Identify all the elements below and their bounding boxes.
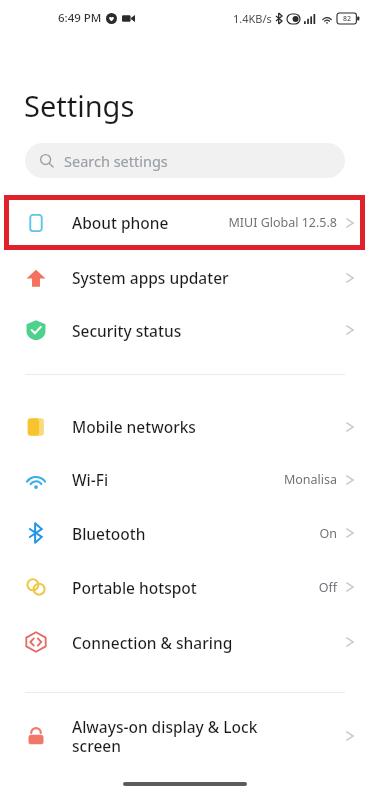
button[interactable]: Wi-Fi xyxy=(0,453,369,506)
button[interactable]: Security status xyxy=(0,304,369,356)
button[interactable]: About phone xyxy=(0,196,369,249)
staticText: Security status xyxy=(72,320,345,341)
button[interactable]: Portable hotspot xyxy=(0,560,369,614)
staticText: 82 xyxy=(343,14,352,24)
staticText: Monalisa xyxy=(283,471,337,488)
staticText: MIUI Global 12.5.8 xyxy=(228,214,337,231)
staticText: Wi-Fi xyxy=(72,469,283,490)
staticText: Always-on display & Lock screen xyxy=(72,716,345,756)
staticText: About phone xyxy=(72,212,228,233)
button[interactable]: Mobile networks xyxy=(0,400,369,453)
staticText: Off xyxy=(318,579,337,596)
staticText: On xyxy=(319,525,337,542)
staticText: Portable hotspot xyxy=(72,577,318,598)
staticText: 6:49 PM xyxy=(58,10,102,26)
button[interactable]: System apps updater xyxy=(0,251,369,304)
button[interactable]: Bluetooth xyxy=(0,506,369,560)
button[interactable]: Search settings xyxy=(25,143,345,178)
staticText: System apps updater xyxy=(72,267,345,288)
staticText: Settings xyxy=(24,86,135,125)
staticText: Mobile networks xyxy=(72,416,345,437)
staticText: Bluetooth xyxy=(72,523,319,544)
button[interactable]: Connection & sharing xyxy=(0,614,369,670)
staticText: Search settings xyxy=(64,151,168,171)
button[interactable]: Always-on display & Lock screen xyxy=(0,706,369,766)
staticText: Connection & sharing xyxy=(72,632,345,653)
staticText: 1.4KB/s xyxy=(233,11,272,26)
